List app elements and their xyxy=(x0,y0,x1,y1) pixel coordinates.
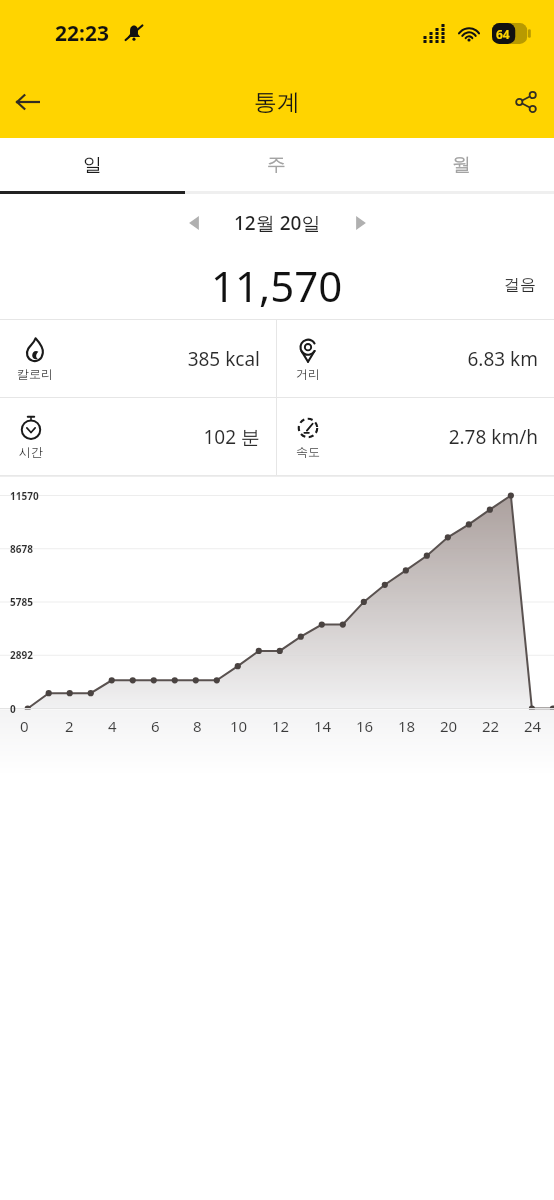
staticText: 주 xyxy=(267,153,286,177)
staticText: 2.78 km/h xyxy=(322,424,538,450)
staticText: 11,570 xyxy=(211,257,343,314)
staticText: 64 xyxy=(496,26,510,42)
staticText: 시간 xyxy=(19,444,43,459)
staticText: 16 xyxy=(356,716,374,736)
button[interactable]: Share xyxy=(498,74,554,130)
staticText: 20 xyxy=(440,716,458,736)
staticText: 11570 xyxy=(10,489,39,503)
button[interactable]: 일 xyxy=(0,138,184,191)
button[interactable]: 거리 xyxy=(277,320,554,397)
staticText: 6.83 km xyxy=(322,346,538,372)
staticText: 8 xyxy=(193,716,202,736)
staticText: 속도 xyxy=(296,444,320,459)
staticText: 12 xyxy=(272,716,290,736)
button[interactable]: Previous day xyxy=(172,201,216,245)
button[interactable]: Back xyxy=(0,74,56,130)
button[interactable]: 주 xyxy=(184,138,369,191)
staticText: 4 xyxy=(108,716,117,736)
staticText: 0 xyxy=(10,702,16,716)
staticText: 14 xyxy=(314,716,332,736)
button[interactable]: 월 xyxy=(369,138,554,191)
button[interactable]: 시간 xyxy=(0,398,276,475)
staticText: 10 xyxy=(230,716,248,736)
staticText: 8678 xyxy=(10,542,33,556)
staticText: 일 xyxy=(83,153,102,177)
staticText: 칼로리 xyxy=(17,366,53,381)
staticText: 385 kcal xyxy=(53,346,260,372)
staticText: 거리 xyxy=(296,366,320,381)
staticText: 22 xyxy=(482,716,500,736)
staticText: 통계 xyxy=(254,88,300,117)
staticText: 24 xyxy=(524,716,542,736)
button[interactable]: 칼로리 xyxy=(0,320,276,397)
staticText: 5785 xyxy=(10,595,33,609)
staticText: 22:23 xyxy=(55,19,109,48)
staticText: 걸음 xyxy=(504,275,536,295)
staticText: 2 xyxy=(65,716,74,736)
staticText: 6 xyxy=(151,716,160,736)
button[interactable]: 속도 xyxy=(277,398,554,475)
staticText: 12월 20일 xyxy=(234,210,321,236)
button[interactable]: Next day xyxy=(339,201,383,245)
staticText: 0 xyxy=(20,716,29,736)
staticText: 월 xyxy=(452,153,471,177)
staticText: 102 분 xyxy=(45,424,260,450)
staticText: 18 xyxy=(398,716,416,736)
staticText: 2892 xyxy=(10,648,33,662)
